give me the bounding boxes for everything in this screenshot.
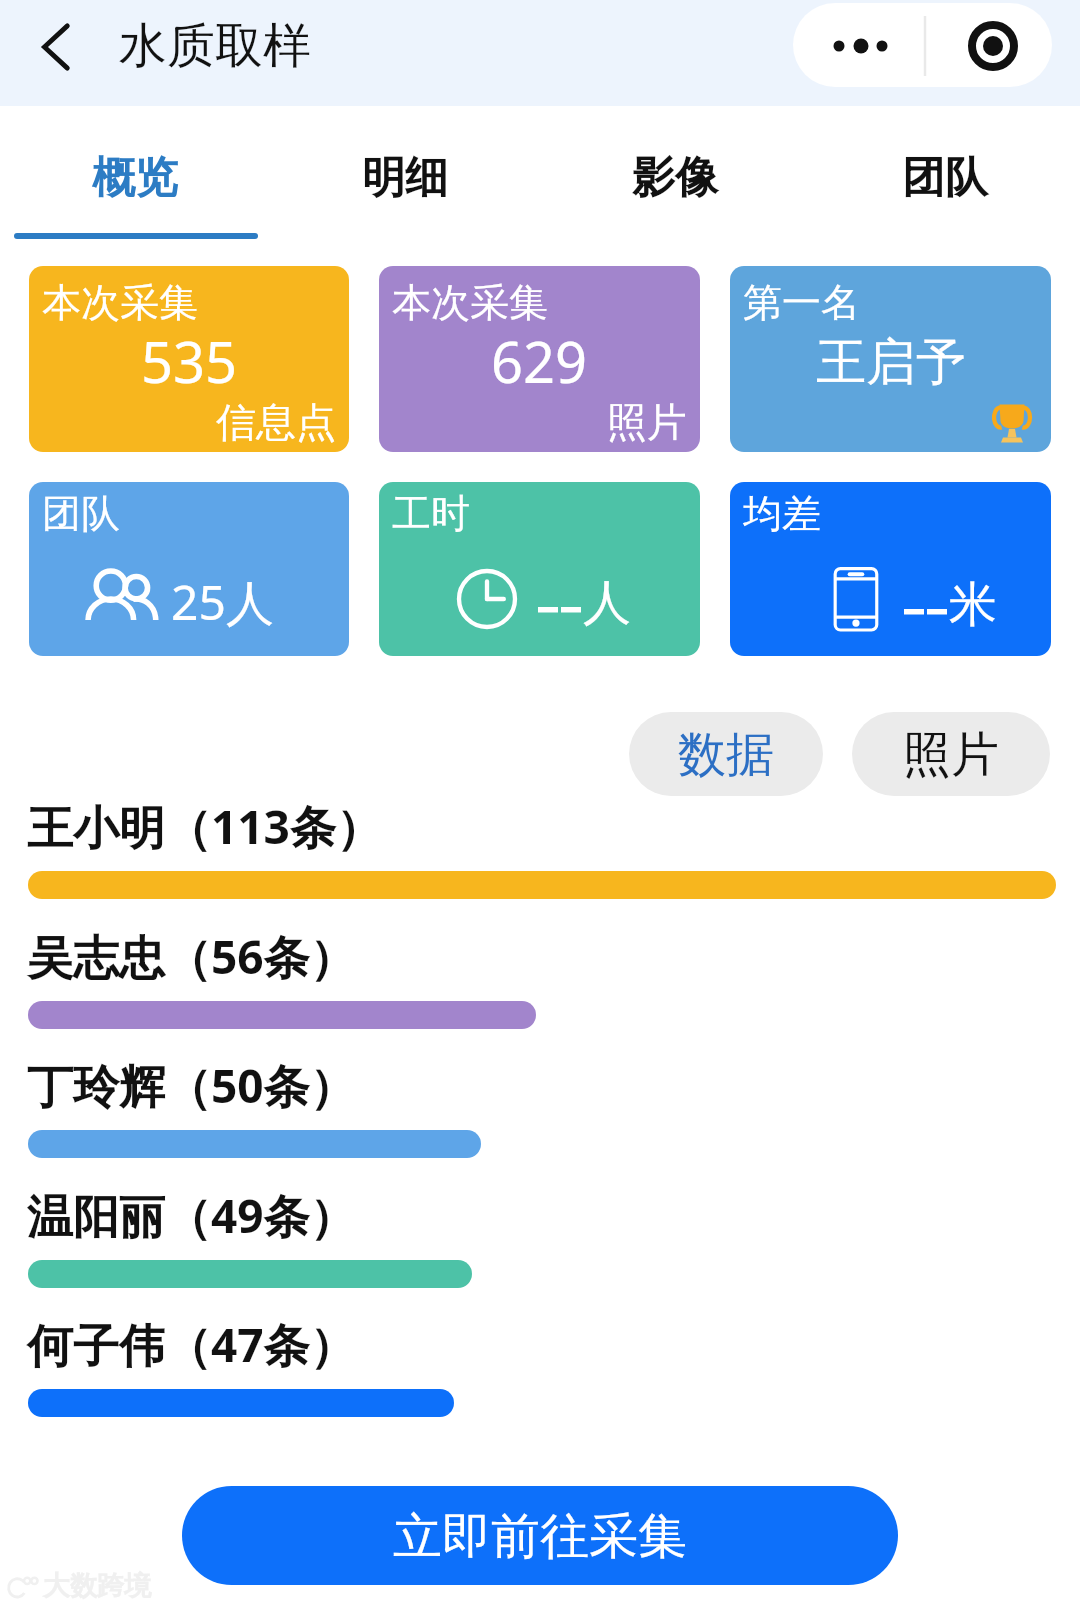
staticText: 均差 [743,489,821,538]
staticText: 人 [583,573,631,633]
staticText: 照片 [903,725,999,785]
button[interactable]: Back [28,20,82,74]
staticText: 何子伟（47条） [27,1313,356,1376]
staticText: 立即前往采集 [393,1506,687,1568]
staticText: 大数跨境 [43,1569,151,1603]
staticText: 629 [491,323,588,399]
button[interactable]: 本次采集 [29,266,349,452]
staticText: 信息点 [216,397,336,447]
button[interactable]: 概览 [0,151,270,245]
staticText: 本次采集 [42,278,198,327]
button[interactable]: 王小明（113条） [0,787,1080,899]
button[interactable]: 照片 [852,712,1050,796]
staticText: 温阳丽（49条） [27,1184,356,1247]
button[interactable]: 立即前往采集 [182,1486,898,1585]
staticText: 团队 [42,489,120,538]
staticText: 概览 [92,151,178,205]
button[interactable]: 明细 [270,151,540,245]
staticText: 工时 [392,489,470,538]
staticText: 王启予 [816,331,966,394]
button[interactable]: More options [793,3,1052,87]
staticText: 水质取样 [119,16,311,76]
staticText: 团队 [902,151,988,205]
staticText: 影像 [632,151,718,205]
button[interactable]: 数据 [629,712,823,796]
staticText: 丁玲辉（50条） [27,1054,356,1117]
staticText: 本次采集 [392,278,548,327]
button[interactable]: 团队 [29,482,349,656]
button[interactable]: 温阳丽（49条） [0,1176,1080,1288]
staticText: 数据 [678,725,774,785]
button[interactable]: 团队 [810,151,1080,245]
staticText: 明细 [362,151,448,205]
staticText: 米 [949,575,997,635]
button[interactable]: 工时 [379,482,700,656]
button[interactable]: 本次采集 [379,266,700,452]
button[interactable]: 何子伟（47条） [0,1305,1080,1417]
staticText: 535 [141,323,238,399]
button[interactable]: 影像 [540,151,810,245]
staticText: 照片 [607,397,687,447]
staticText: 25人 [171,569,274,635]
button[interactable]: 第一名 [730,266,1051,452]
staticText: 吴志忠（56条） [27,925,356,988]
button[interactable]: 丁玲辉（50条） [0,1046,1080,1158]
staticText: 王小明（113条） [27,795,382,858]
button[interactable]: 均差 [730,482,1051,656]
button[interactable]: 吴志忠（56条） [0,917,1080,1029]
staticText: 第一名 [743,278,860,327]
